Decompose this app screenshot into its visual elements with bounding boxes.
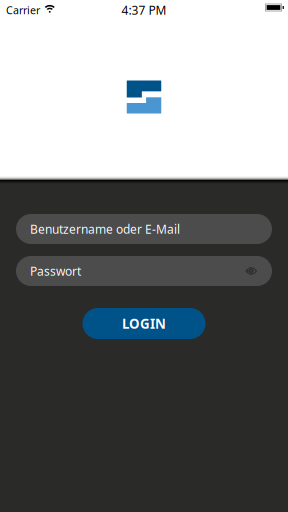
button[interactable]: LOGIN [82,308,205,339]
staticText: Carrier [6,3,40,17]
button[interactable]: Passwort [16,256,272,286]
button[interactable]: Benutzername oder E-Mail [16,214,272,244]
staticText: Passwort [30,263,81,279]
button[interactable]: Passwort anzeigen [238,256,264,286]
staticText: Benutzername oder E-Mail [30,221,180,237]
staticText: 4:37 PM [121,2,166,18]
staticText: LOGIN [122,315,166,332]
